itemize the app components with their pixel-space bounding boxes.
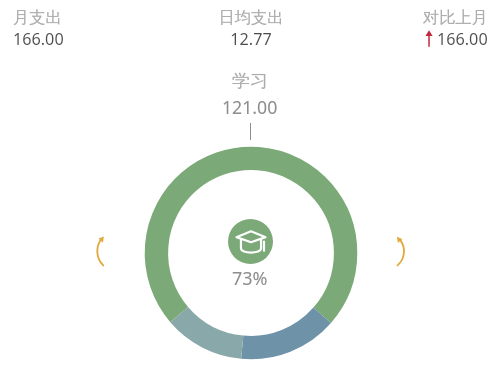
staticText: 日均支出	[172, 7, 330, 28]
button[interactable]: Previous category	[88, 226, 120, 276]
button[interactable]: 对比上月	[330, 7, 488, 50]
staticText: 学习	[232, 70, 268, 93]
staticText: 121.00	[222, 95, 278, 119]
staticText: 对比上月	[330, 7, 488, 28]
button[interactable]: 月支出	[13, 7, 172, 50]
staticText: 166.00	[13, 28, 172, 50]
staticText: 月支出	[13, 7, 172, 28]
button[interactable]: 日均支出	[172, 7, 330, 50]
button[interactable]: Next category	[380, 226, 412, 276]
staticText: 12.77	[172, 28, 330, 50]
button[interactable]: 学习 category	[228, 219, 273, 264]
staticText: 73%	[232, 266, 268, 291]
button[interactable]: Spending by category chart	[144, 146, 358, 360]
staticText: 166.00	[437, 28, 488, 50]
